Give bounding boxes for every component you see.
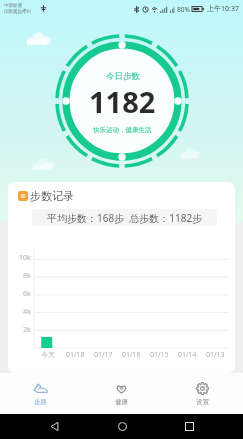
staticText: 10k [19, 253, 31, 263]
staticText: 健康 [115, 398, 128, 406]
button[interactable]: Back [41, 414, 67, 439]
staticText: 快乐运动，健康生活 [93, 126, 152, 134]
button[interactable]: Recents [176, 414, 202, 439]
button[interactable]: 设置 [162, 373, 243, 414]
staticText: 4k [23, 307, 31, 317]
staticText: 中国联通 [4, 3, 22, 9]
staticText: 01/15 [150, 350, 169, 360]
staticText: 01/17 [94, 350, 113, 360]
staticText: 上午10:37 [207, 4, 239, 14]
button[interactable]: Home [109, 414, 135, 439]
staticText: 仅限紧急呼叫 [4, 9, 31, 15]
staticText: 8k [23, 271, 31, 281]
staticText: 6k [23, 289, 31, 299]
staticText: 走路 [34, 398, 47, 406]
staticText: 步数记录 [30, 189, 74, 203]
staticText: 今日步数 [106, 71, 140, 82]
staticText: 01/18 [66, 350, 85, 360]
staticText: 2k [23, 325, 31, 335]
staticText: 今天 [41, 350, 55, 359]
staticText: 80% [177, 5, 190, 14]
button[interactable]: 走路 [0, 373, 81, 414]
staticText: 设置 [196, 398, 209, 406]
staticText: 01/16 [122, 350, 141, 360]
staticText: 1182 [89, 82, 156, 121]
staticText: 01/13 [206, 350, 225, 360]
staticText: 平均步数：168步 总步数：1182步 [47, 211, 203, 225]
staticText: 01/14 [178, 350, 197, 360]
button[interactable]: 健康 [81, 373, 162, 414]
